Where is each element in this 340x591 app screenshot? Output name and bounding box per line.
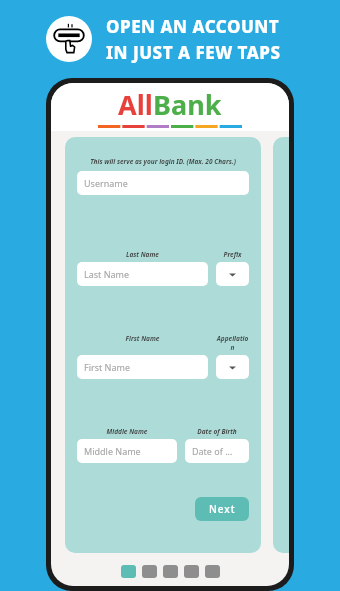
staticText: Last Name [77, 250, 208, 259]
staticText: Date of Birth [185, 427, 249, 436]
button[interactable] [142, 565, 157, 578]
staticText: All [118, 86, 153, 123]
staticText: OPEN AN ACCOUNT [106, 15, 280, 38]
button[interactable]: Open dropdown [216, 355, 249, 379]
button[interactable]: Middle Name [77, 439, 177, 463]
staticText: Next [209, 502, 236, 516]
staticText: First Name [77, 334, 208, 343]
staticText: Username [84, 177, 128, 189]
button[interactable]: Last Name [77, 262, 208, 286]
button[interactable]: First Name [77, 355, 208, 379]
staticText: Last Name [84, 268, 130, 280]
staticText: Prefix [216, 250, 249, 259]
staticText: Date of ... [192, 445, 233, 457]
button[interactable] [205, 565, 220, 578]
button[interactable]: Username [77, 171, 249, 195]
staticText: IN JUST A FEW TAPS [106, 41, 281, 64]
button[interactable] [184, 565, 199, 578]
button[interactable]: Next [195, 497, 249, 521]
staticText: Appellation [216, 334, 249, 352]
button[interactable] [163, 565, 178, 578]
button[interactable]: Open dropdown [216, 262, 249, 286]
staticText: This will serve as your login ID. (Max. … [77, 157, 249, 166]
staticText: Bank [153, 86, 222, 123]
staticText: First Name [84, 361, 130, 373]
button[interactable]: Sign up [46, 16, 92, 62]
staticText: Middle Name [84, 445, 141, 457]
button[interactable]: Date of ... [185, 439, 249, 463]
staticText: Middle Name [77, 427, 177, 436]
button[interactable] [121, 565, 136, 578]
